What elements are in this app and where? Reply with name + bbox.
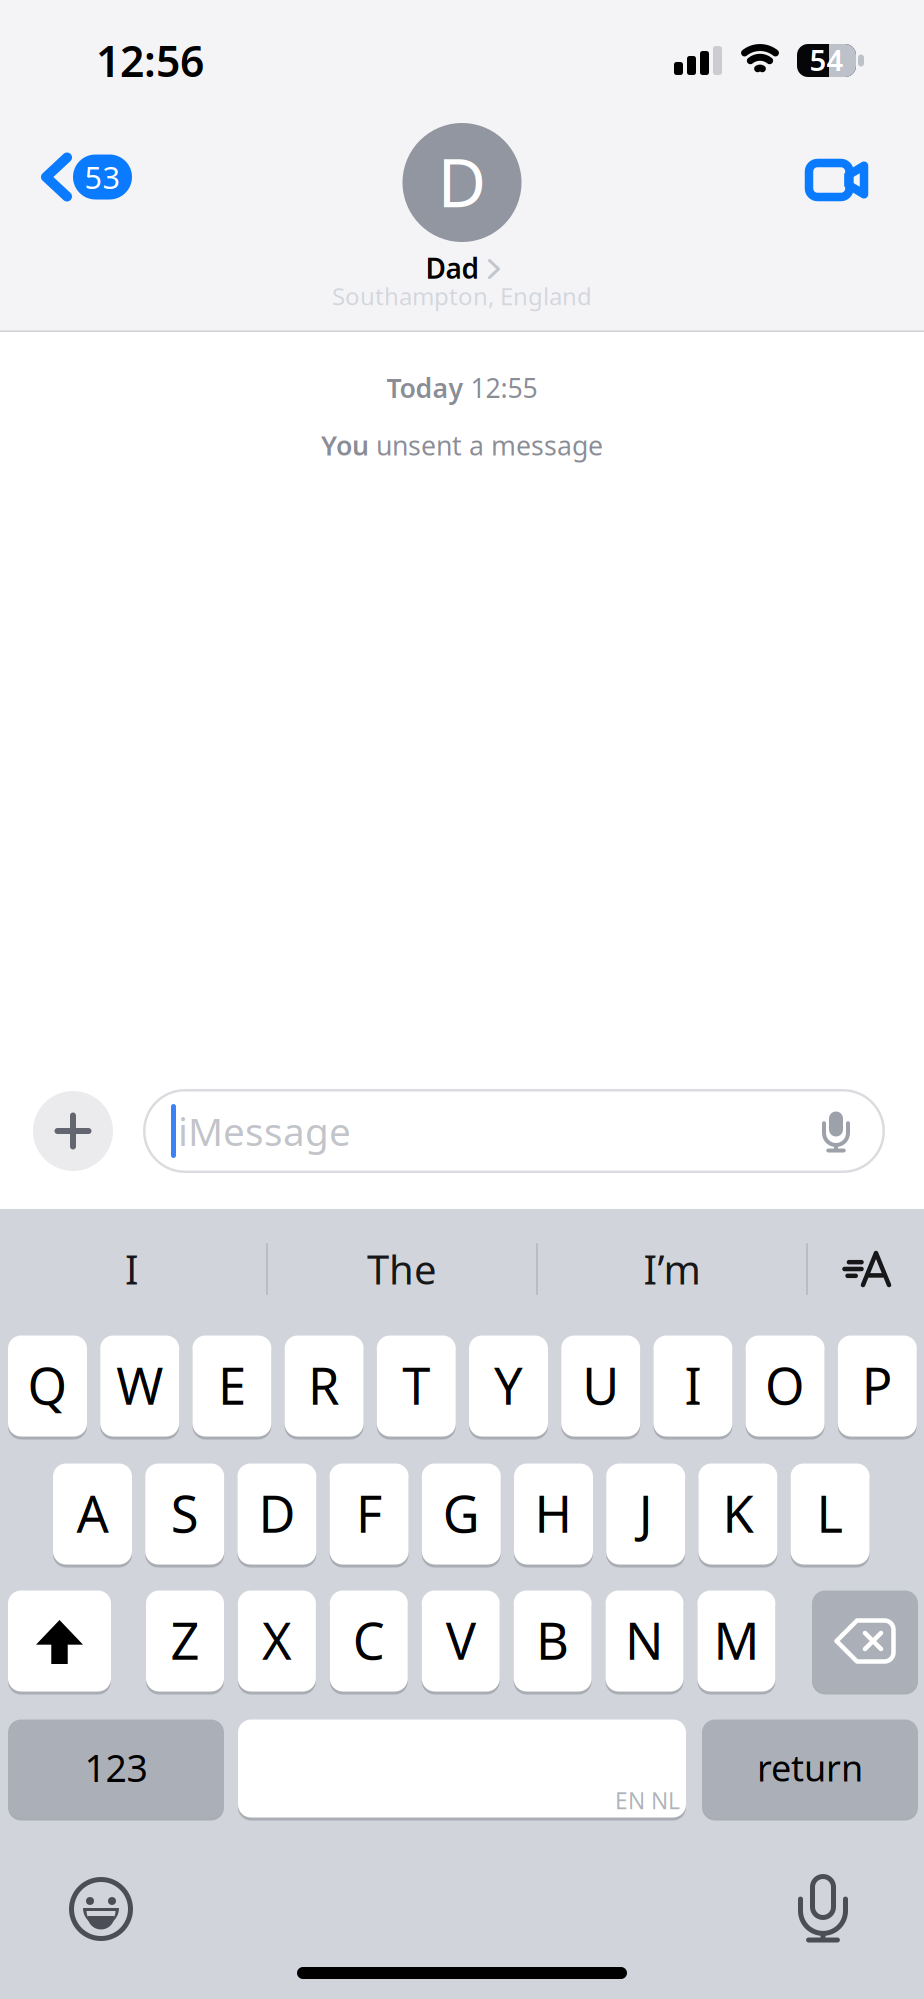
- staticText: D: [258, 1479, 295, 1547]
- button[interactable]: S: [145, 1462, 224, 1566]
- button[interactable]: A: [53, 1462, 132, 1566]
- button[interactable]: C: [330, 1589, 408, 1693]
- staticText: D: [437, 137, 486, 226]
- button[interactable]: Emoji keyboard: [59, 1867, 143, 1951]
- staticText: A: [76, 1479, 108, 1547]
- staticText: I: [684, 1351, 701, 1419]
- staticText: O: [765, 1351, 805, 1419]
- button[interactable]: R: [285, 1334, 364, 1438]
- staticText: Southampton, England: [332, 280, 592, 312]
- staticText: L: [817, 1479, 844, 1547]
- button[interactable]: Dad, contact details: [0, 120, 924, 332]
- button[interactable]: Add attachment: [33, 1089, 113, 1173]
- staticText: Today 12:55: [386, 370, 537, 405]
- button[interactable]: Z: [146, 1589, 224, 1693]
- button[interactable]: F: [330, 1462, 409, 1566]
- staticText: iMessage: [178, 1105, 351, 1157]
- button[interactable]: space: [238, 1718, 686, 1819]
- staticText: 54: [809, 40, 843, 79]
- staticText: 123: [84, 1743, 147, 1792]
- staticText: W: [116, 1351, 163, 1419]
- button[interactable]: I’m: [538, 1222, 806, 1316]
- button[interactable]: G: [422, 1462, 501, 1566]
- button[interactable]: return: [702, 1718, 918, 1819]
- button[interactable]: W: [100, 1334, 179, 1438]
- button[interactable]: K: [698, 1462, 777, 1566]
- staticText: X: [262, 1606, 292, 1674]
- button[interactable]: Writing tools: [808, 1222, 924, 1316]
- staticText: V: [446, 1606, 476, 1674]
- staticText: R: [308, 1351, 340, 1419]
- button[interactable]: I: [0, 1222, 266, 1316]
- staticText: Dad: [425, 249, 479, 287]
- staticText: return: [757, 1744, 863, 1791]
- button[interactable]: Back, 53 unread conversations: [0, 133, 156, 221]
- staticText: The: [367, 1242, 437, 1295]
- staticText: K: [722, 1479, 753, 1547]
- button[interactable]: T: [377, 1334, 456, 1438]
- button[interactable]: X: [238, 1589, 316, 1693]
- button[interactable]: M: [697, 1589, 775, 1693]
- button[interactable]: B: [514, 1589, 592, 1693]
- button[interactable]: FaceTime: [773, 136, 922, 224]
- staticText: T: [402, 1351, 430, 1419]
- button[interactable]: I: [653, 1334, 732, 1438]
- button[interactable]: H: [514, 1462, 593, 1566]
- staticText: 53: [84, 157, 120, 197]
- staticText: 12:56: [96, 32, 204, 89]
- staticText: F: [356, 1479, 382, 1547]
- button[interactable]: Shift: [8, 1589, 111, 1693]
- staticText: E: [218, 1351, 246, 1419]
- staticText: C: [353, 1606, 385, 1674]
- staticText: M: [713, 1606, 759, 1674]
- staticText: U: [582, 1351, 619, 1419]
- staticText: Y: [494, 1351, 523, 1419]
- staticText: N: [625, 1606, 664, 1674]
- staticText: B: [536, 1606, 569, 1674]
- button[interactable]: Q: [8, 1334, 87, 1438]
- staticText: J: [639, 1479, 653, 1547]
- button[interactable]: V: [422, 1589, 500, 1693]
- button[interactable]: Delete: [812, 1589, 918, 1693]
- staticText: Q: [27, 1351, 67, 1419]
- button[interactable]: N: [605, 1589, 683, 1693]
- button[interactable]: J: [606, 1462, 685, 1566]
- button[interactable]: 123: [8, 1718, 224, 1819]
- staticText: G: [443, 1479, 480, 1547]
- button[interactable]: U: [561, 1334, 640, 1438]
- button[interactable]: The: [268, 1222, 536, 1316]
- staticText: I’m: [643, 1242, 700, 1295]
- staticText: S: [171, 1479, 199, 1547]
- staticText: H: [534, 1479, 572, 1547]
- staticText: Z: [170, 1606, 199, 1674]
- button[interactable]: P: [838, 1334, 917, 1438]
- button[interactable]: Dictation: [781, 1865, 865, 1949]
- button[interactable]: O: [746, 1334, 825, 1438]
- staticText: I: [125, 1242, 139, 1295]
- button[interactable]: D: [237, 1462, 316, 1566]
- button[interactable]: E: [192, 1334, 271, 1438]
- staticText: You unsent a message: [321, 427, 603, 463]
- button[interactable]: Y: [469, 1334, 548, 1438]
- staticText: P: [862, 1351, 893, 1419]
- staticText: EN NL: [615, 1785, 680, 1815]
- button[interactable]: L: [791, 1462, 870, 1566]
